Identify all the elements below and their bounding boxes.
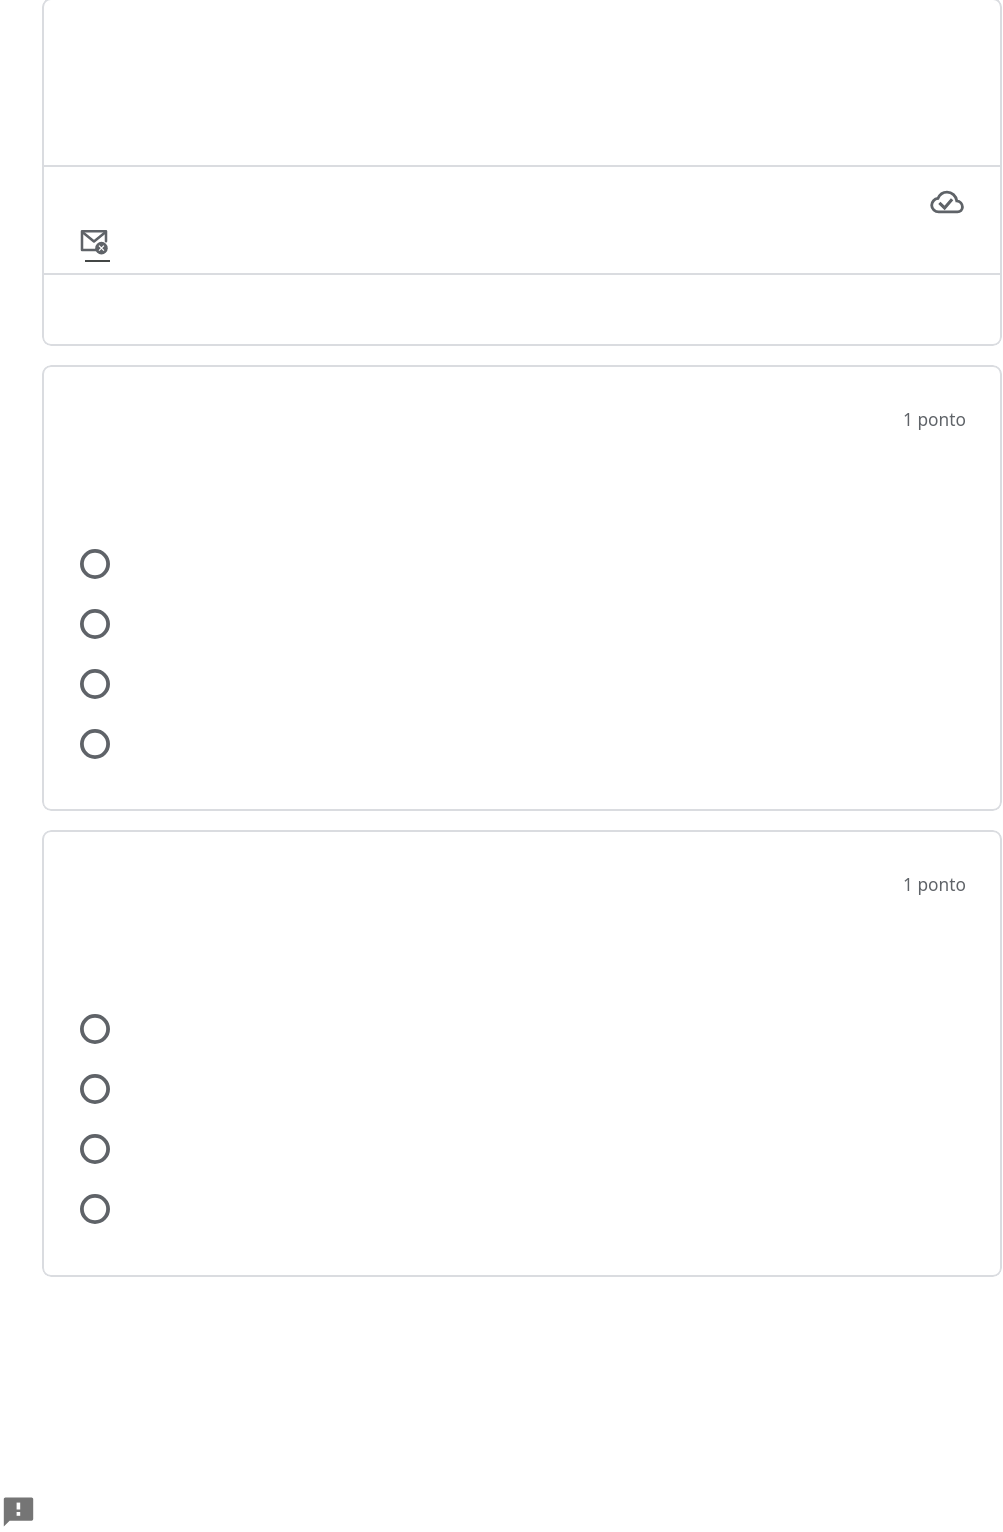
staticText: 1 ponto — [903, 873, 966, 897]
button[interactable]: Saved to Drive — [923, 179, 971, 227]
button[interactable]: Option 4 — [71, 1182, 961, 1236]
button[interactable]: Option 1 — [71, 537, 961, 591]
button[interactable]: Option 4 — [71, 717, 961, 771]
button[interactable]: Option 1 — [71, 1002, 961, 1056]
button[interactable]: Option 2 — [71, 1062, 961, 1116]
button[interactable]: Option 2 — [71, 597, 961, 651]
button[interactable]: Option 3 — [71, 1122, 961, 1176]
button[interactable]: Option 3 — [71, 657, 961, 711]
button[interactable]: Unsubscribe — [72, 220, 116, 264]
staticText: 1 ponto — [903, 408, 966, 432]
button[interactable]: Send feedback — [0, 1490, 38, 1532]
